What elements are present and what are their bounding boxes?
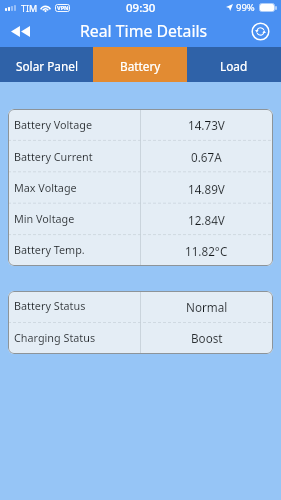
staticText: 99% [236, 1, 255, 14]
staticText: Charging Status [14, 330, 96, 345]
staticText: Real Time Details [80, 20, 208, 42]
staticText: 12.84V [188, 212, 225, 228]
staticText: VPN [57, 4, 69, 12]
staticText: Boost [191, 330, 223, 346]
staticText: 14.89V [188, 181, 225, 197]
staticText: Battery Voltage [14, 117, 92, 132]
staticText: Load [220, 58, 248, 74]
staticText: Battery Status [14, 298, 86, 313]
staticText: TIM [21, 2, 38, 14]
button[interactable]: Refresh [239, 17, 281, 45]
staticText: Max Voltage [14, 180, 77, 195]
staticText: Battery Temp. [14, 242, 85, 257]
staticText: Min Voltage [14, 211, 75, 226]
staticText: 0.67A [191, 149, 222, 165]
button[interactable]: Load [187, 47, 281, 82]
button[interactable]: Back [0, 17, 41, 45]
staticText: Battery Current [14, 149, 93, 164]
staticText: Battery [120, 58, 161, 74]
staticText: 09:30 [126, 0, 156, 16]
staticText: 11.82°C [185, 243, 228, 259]
button[interactable]: Solar Panel [0, 47, 93, 82]
button[interactable]: Battery [93, 47, 187, 82]
staticText: Solar Panel [16, 58, 78, 74]
staticText: 14.73V [188, 117, 225, 133]
staticText: Normal [186, 299, 228, 315]
